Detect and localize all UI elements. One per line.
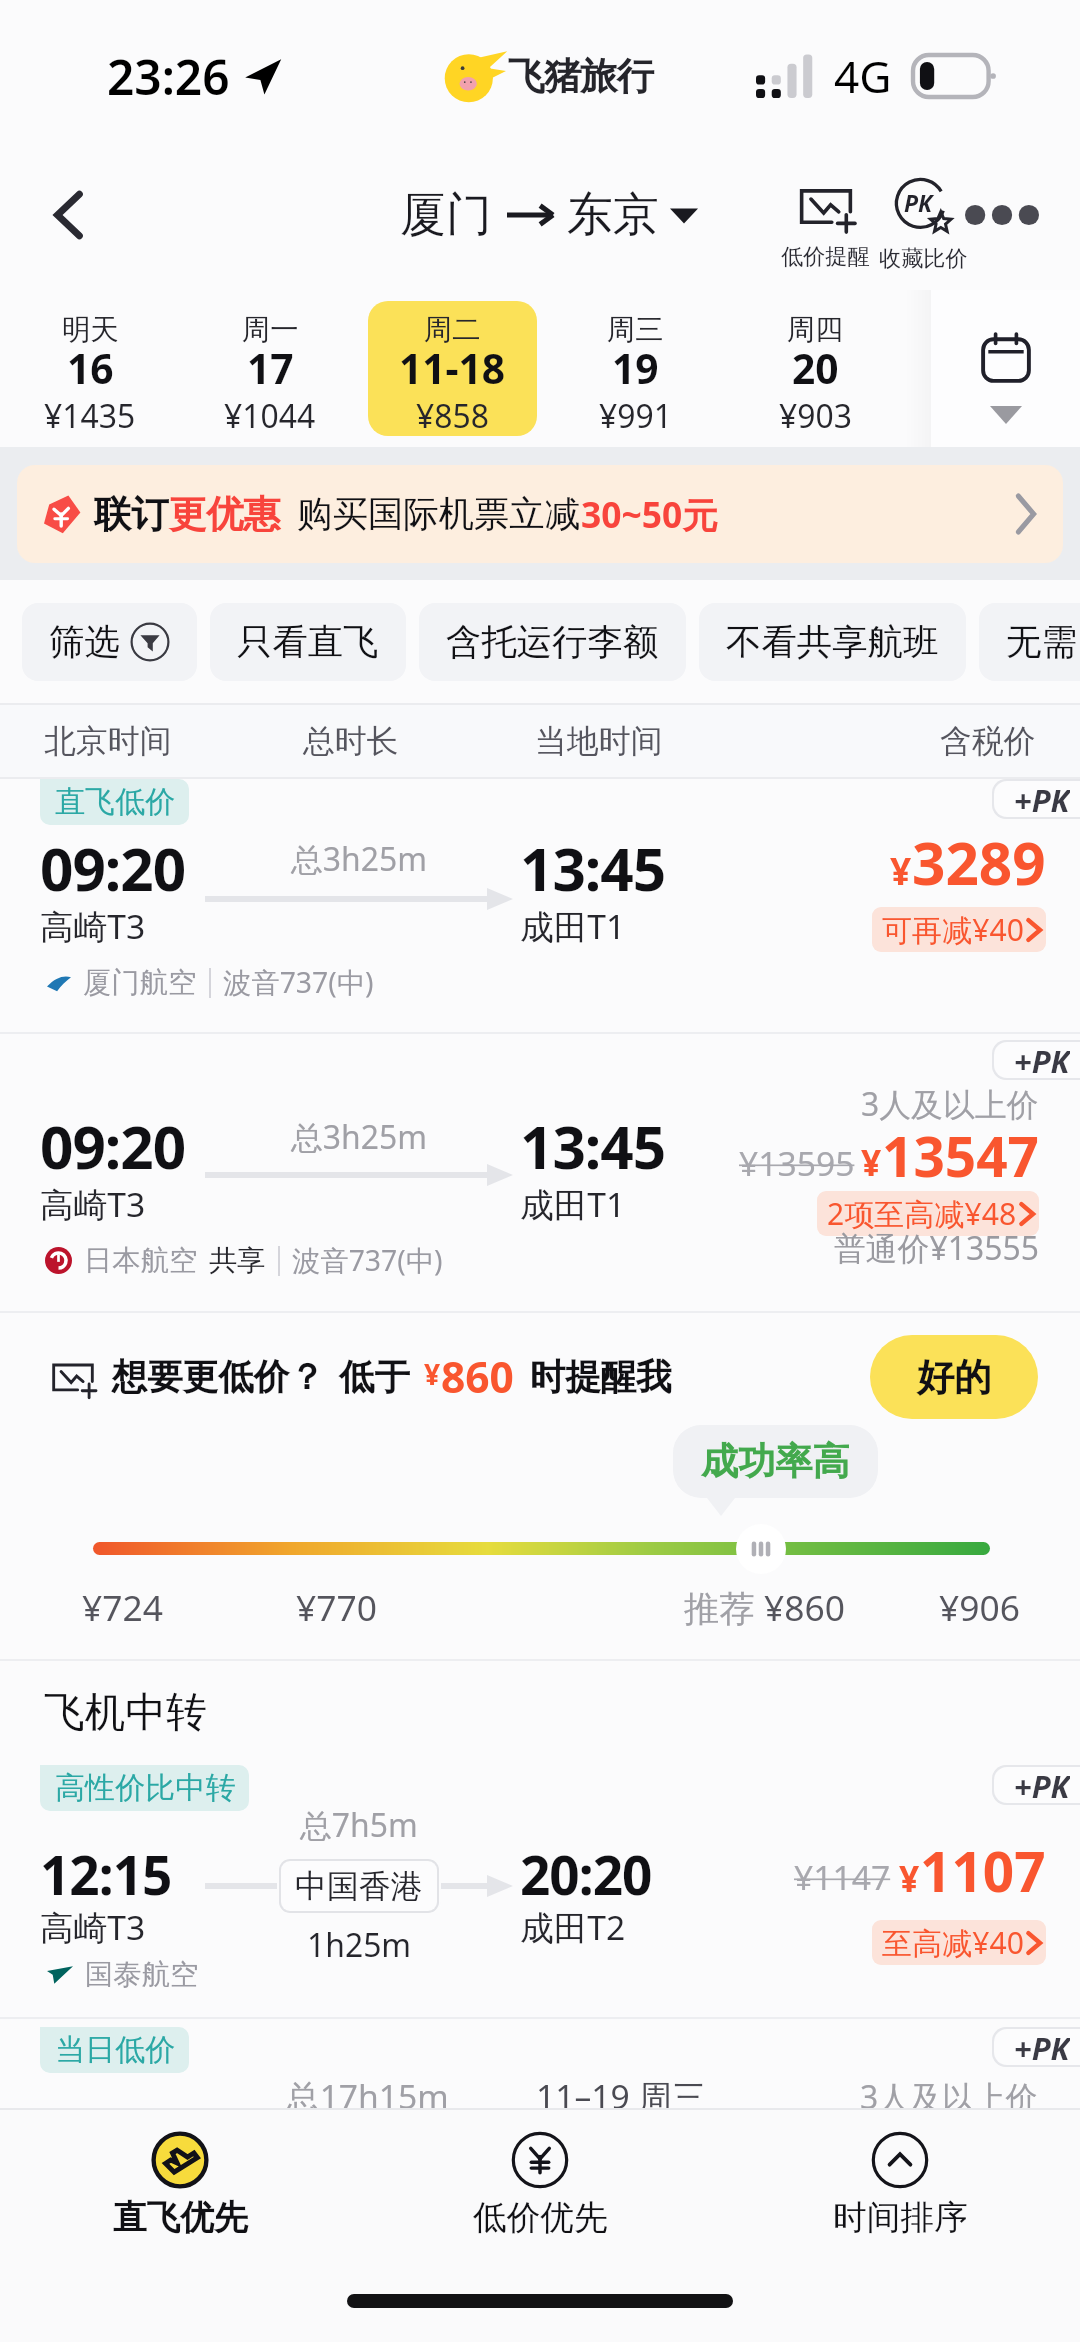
button[interactable]: 只看直飞 <box>210 603 406 681</box>
staticText: 直飞优先 <box>113 2197 248 2239</box>
staticText: ¥991 <box>599 394 672 436</box>
staticText: 北京时间 <box>44 721 172 761</box>
staticText: 直飞低价 <box>55 783 176 821</box>
staticText: 不看共享航班 <box>726 620 939 665</box>
staticText: 成田T2 <box>520 1904 626 1950</box>
staticText: 11–19 周三 <box>536 2073 706 2115</box>
button[interactable]: 低价提醒 <box>781 177 870 271</box>
staticText: 中国香港 <box>295 1866 423 1906</box>
staticText: ¥724 <box>82 1583 163 1631</box>
staticText: 高性价比中转 <box>55 1769 236 1807</box>
staticText: 购买国际机票立减 <box>297 492 581 537</box>
staticText: 13547 <box>882 1118 1039 1193</box>
staticText: 13:45 <box>520 829 666 909</box>
button[interactable]: 周一 <box>188 301 352 436</box>
staticText: 高崎T3 <box>40 1904 146 1950</box>
staticText: 含税价 <box>940 721 1036 761</box>
staticText: 厦门航空 <box>83 965 197 1001</box>
staticText: 筛选 <box>49 620 120 665</box>
staticText: 20 <box>792 340 839 395</box>
staticText: 总17h15m <box>286 2073 449 2115</box>
button[interactable]: 无需 <box>979 603 1080 681</box>
button[interactable]: +PK <box>992 1040 1080 1080</box>
button[interactable]: 2项至高减¥48 <box>817 1191 1039 1236</box>
staticText: 3人及以上价 <box>861 1082 1039 1126</box>
staticText: 时间排序 <box>833 2197 968 2239</box>
button[interactable]: 明天 <box>8 301 172 436</box>
staticText: ¥770 <box>296 1583 377 1631</box>
button[interactable]: 周三 <box>553 301 717 436</box>
staticText: 成功率高 <box>701 1438 850 1485</box>
button[interactable]: Price slider <box>736 1524 786 1574</box>
staticText: 3289 <box>912 823 1046 903</box>
staticText: 波音737(中) <box>223 963 374 1002</box>
staticText: 860 <box>441 1348 514 1406</box>
staticText: 当日低价 <box>55 2031 176 2069</box>
button[interactable]: 直飞低价 <box>0 779 1080 1034</box>
staticText: 12:15 <box>40 1838 172 1910</box>
staticText: 成田T1 <box>520 903 626 949</box>
staticText: 厦门 <box>400 186 493 244</box>
staticText: 总3h25m <box>291 1115 428 1159</box>
button[interactable]: 直飞优先 <box>0 2110 360 2260</box>
staticText: 周二 <box>424 312 481 348</box>
button[interactable]: +PK <box>992 779 1080 819</box>
staticText: +PK <box>1014 781 1070 815</box>
button[interactable]: More options <box>965 170 1055 260</box>
button[interactable]: 联订 <box>17 465 1063 563</box>
button[interactable]: +PK <box>0 1034 1080 1313</box>
button[interactable]: 含托运行李额 <box>419 603 686 681</box>
staticText: 推荐 <box>684 1583 764 1631</box>
staticText: 周四 <box>787 312 844 348</box>
staticText: ¥858 <box>416 394 489 436</box>
button[interactable]: +PK <box>992 2027 1080 2067</box>
button[interactable]: 不看共享航班 <box>699 603 966 681</box>
button[interactable]: 可再减¥40 <box>872 907 1046 952</box>
staticText: 11-18 <box>399 340 506 395</box>
staticText: 19 <box>612 340 659 395</box>
staticText: 想要更低价？ <box>112 1355 325 1400</box>
staticText: 明天 <box>62 312 119 348</box>
staticText: 国泰航空 <box>85 1957 199 1993</box>
button[interactable]: 时间排序 <box>720 2110 1080 2260</box>
button[interactable]: 至高减¥40 <box>872 1920 1046 1965</box>
button[interactable]: 周二 <box>368 301 537 436</box>
button[interactable]: Back <box>0 140 140 290</box>
staticText: +PK <box>1014 2029 1070 2063</box>
staticText: ¥906 <box>939 1583 1020 1631</box>
staticText: 09:20 <box>40 1107 186 1187</box>
staticText: +PK <box>1014 1042 1070 1076</box>
staticText: ¥860 <box>764 1583 845 1631</box>
staticText: 共享 <box>209 1243 266 1279</box>
staticText: 30~50元 <box>581 490 718 538</box>
staticText: ¥13595 <box>739 1140 855 1186</box>
button[interactable]: Calendar <box>931 290 1080 447</box>
staticText: 3人及以上价 <box>860 2075 1038 2115</box>
staticText: 日本航空 <box>84 1243 198 1279</box>
staticText: 好的 <box>917 1354 992 1401</box>
staticText: ¥ <box>424 1355 441 1394</box>
staticText: 高崎T3 <box>40 903 146 949</box>
button[interactable]: 好的 <box>870 1335 1038 1419</box>
button[interactable]: 厦门 <box>400 186 698 244</box>
staticText: 1h25m <box>307 1923 412 1966</box>
staticText: 飞猪旅行 <box>508 53 653 100</box>
staticText: 含托运行李额 <box>446 620 659 665</box>
staticText: 总3h25m <box>291 837 428 881</box>
staticText: 至高减¥40 <box>882 1922 1024 1963</box>
staticText: 联订 <box>94 491 169 538</box>
staticText: 波音737(中) <box>292 1241 443 1280</box>
staticText: 13:45 <box>520 1107 666 1187</box>
button[interactable]: PK <box>879 177 968 273</box>
staticText: ¥1147 <box>794 1854 891 1900</box>
button[interactable]: 筛选 <box>22 603 197 681</box>
staticText: 普通价¥13555 <box>834 1226 1039 1270</box>
button[interactable]: 周四 <box>733 301 897 436</box>
staticText: 总7h5m <box>300 1803 418 1847</box>
button[interactable]: +PK <box>992 1765 1080 1805</box>
staticText: 当地时间 <box>535 721 663 761</box>
button[interactable]: 低价优先 <box>360 2110 720 2260</box>
staticText: 成田T1 <box>520 1181 626 1227</box>
staticText: 1107 <box>920 1833 1046 1908</box>
staticText: ¥ <box>890 845 912 896</box>
